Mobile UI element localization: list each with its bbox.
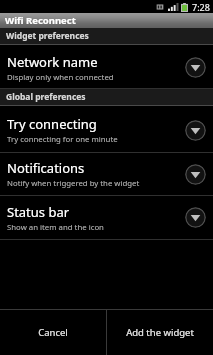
staticText: Wifi Reconnect xyxy=(5,14,76,27)
button[interactable]: Notifications xyxy=(0,153,213,195)
staticText: Global preferences xyxy=(6,91,86,103)
staticText: Try connecting xyxy=(7,115,97,133)
staticText: Add the widget xyxy=(126,326,194,339)
button[interactable]: Open options xyxy=(185,120,206,141)
button[interactable]: Open options xyxy=(185,164,206,185)
staticText: Notify when triggered by the widget xyxy=(7,178,140,189)
staticText: Try connecting for one minute xyxy=(7,134,118,145)
button[interactable]: Try connecting xyxy=(0,108,213,152)
staticText: Network name xyxy=(7,53,98,71)
staticText: 7:28 xyxy=(192,1,210,13)
staticText: Display only when connected xyxy=(7,72,114,83)
staticText: Status bar xyxy=(7,203,70,221)
staticText: Widget preferences xyxy=(6,30,89,42)
button[interactable]: Network name xyxy=(0,47,213,88)
button[interactable]: Open options xyxy=(185,57,206,78)
staticText: Notifications xyxy=(7,159,85,177)
button[interactable]: Open options xyxy=(185,207,206,228)
staticText: Cancel xyxy=(38,326,68,339)
staticText: Show an item and the icon xyxy=(7,222,104,233)
button[interactable]: Cancel xyxy=(0,310,106,355)
button[interactable]: Status bar xyxy=(0,196,213,239)
button[interactable]: Add the widget xyxy=(107,310,213,355)
